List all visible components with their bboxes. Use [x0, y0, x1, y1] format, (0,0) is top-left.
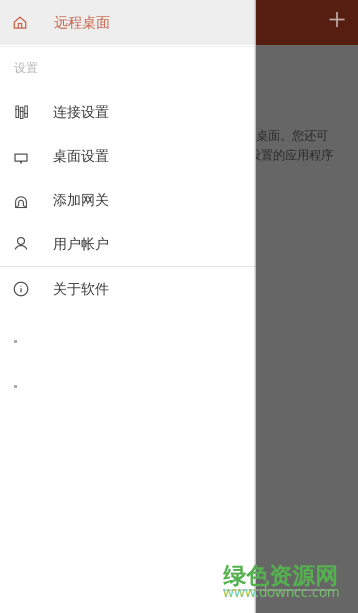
- button[interactable]: 添加网关: [0, 178, 256, 222]
- staticText: 用户帐户: [53, 235, 109, 253]
- staticText: 桌面设置: [53, 147, 109, 165]
- staticText: 远程桌面: [54, 14, 110, 31]
- staticText: 绿色资源网: [223, 562, 338, 591]
- button[interactable]: 桌面设置: [0, 134, 256, 178]
- button[interactable]: 远程桌面: [0, 0, 256, 45]
- staticText: 轻点加号添加新的远程桌面。您还可: [136, 128, 328, 143]
- staticText: 连接设置: [53, 103, 109, 121]
- button[interactable]: 关于软件: [0, 267, 256, 311]
- button[interactable]: 连接设置: [0, 90, 256, 134]
- staticText: 添加网关: [53, 191, 109, 209]
- staticText: 以连接到管理员为您设置的应用程序: [141, 147, 333, 163]
- staticText: www.downcc.com: [223, 583, 340, 601]
- button[interactable]: Add remote desktop: [316, 0, 358, 45]
- staticText: 关于软件: [53, 280, 109, 298]
- button[interactable]: 用户帐户: [0, 222, 256, 266]
- staticText: 设置: [14, 60, 38, 75]
